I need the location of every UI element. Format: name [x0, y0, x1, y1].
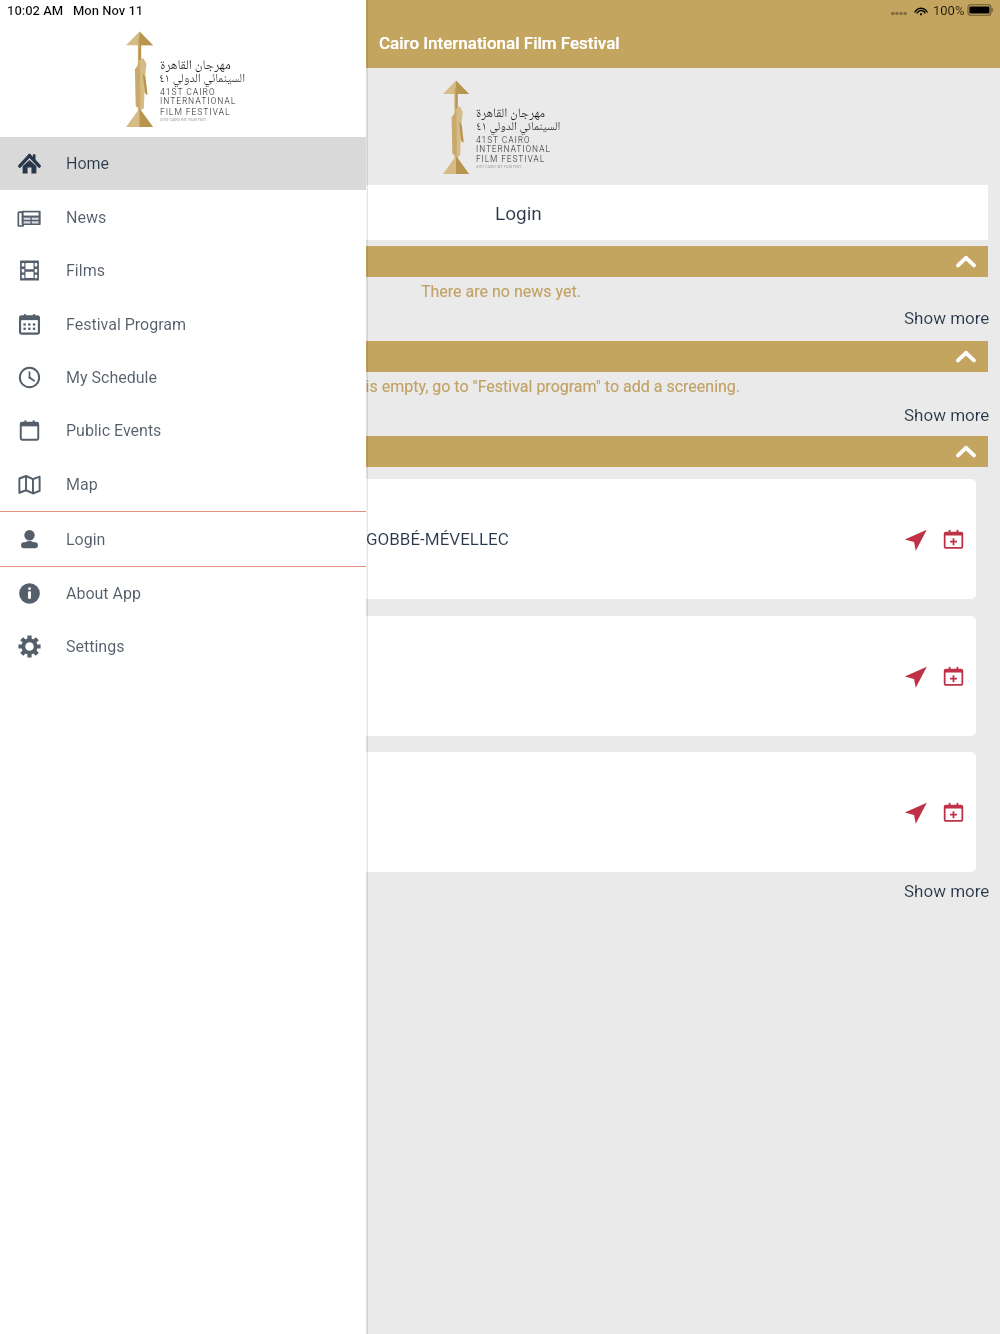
button[interactable]: Show more: [890, 304, 1000, 332]
button[interactable]: Map: [0, 457, 366, 511]
staticText: 41ST CAIRO INT. FILM FEST.: [160, 118, 207, 122]
button[interactable]: Add to calendar: [934, 657, 972, 695]
staticText: Home: [66, 154, 110, 173]
staticText: مهرجان القاهرة: [160, 55, 231, 78]
staticText: My Schedule: [66, 368, 157, 387]
button[interactable]: Home: [0, 137, 366, 190]
staticText: Login: [495, 202, 542, 224]
staticText: 41ST CAIRO: [476, 135, 531, 145]
staticText: There are no news yet.: [421, 282, 581, 301]
staticText: News: [66, 208, 107, 227]
staticText: About App: [66, 584, 141, 603]
staticText: Map: [66, 475, 98, 494]
staticText: INTERNATIONAL: [476, 144, 551, 154]
button[interactable]: News: [0, 190, 366, 244]
staticText: INTERNATIONAL: [160, 96, 237, 106]
staticText: Your schedule is empty, go to "Festival …: [261, 377, 741, 396]
button[interactable]: Login: [0, 185, 988, 240]
button[interactable]: Show more: [890, 877, 1000, 905]
button[interactable]: Show more: [890, 401, 1000, 429]
staticText: Settings: [66, 637, 125, 656]
button[interactable]: Collapse section: [0, 341, 988, 372]
staticText: السينمائي الدولي ٤١: [159, 69, 246, 90]
staticText: 10:02 AM: [7, 3, 64, 18]
button[interactable]: Add to calendar: [934, 793, 972, 831]
button[interactable]: About App: [0, 567, 366, 620]
button[interactable]: Directions: [24, 616, 976, 736]
staticText: Mon Nov 11: [73, 3, 144, 18]
staticText: Show more: [904, 308, 990, 328]
staticText: Festival Program: [66, 315, 187, 334]
button[interactable]: Directions: [896, 793, 934, 831]
staticText: Show more: [904, 405, 990, 425]
button[interactable]: LE VOYAGE DU PRINCE - J-F. LAGUIONIE, X.…: [24, 479, 976, 599]
staticText: 41ST CAIRO INT. FILM FEST.: [476, 165, 522, 169]
staticText: 41ST CAIRO: [160, 87, 216, 97]
button[interactable]: Directions: [24, 752, 976, 872]
staticText: Cairo International Film Festival: [379, 33, 620, 53]
button[interactable]: Login: [0, 512, 366, 566]
button[interactable]: Festival Program: [0, 297, 366, 351]
button[interactable]: Directions: [896, 657, 934, 695]
staticText: 100%: [933, 3, 965, 18]
staticText: مهرجان القاهرة: [476, 103, 546, 125]
staticText: Show more: [904, 881, 990, 901]
staticText: FILM FESTIVAL: [160, 107, 231, 117]
button[interactable]: Public Events: [0, 404, 366, 457]
staticText: Public Events: [66, 421, 162, 440]
staticText: LE VOYAGE DU PRINCE - J-F. LAGUIONIE, X.…: [34, 529, 509, 549]
button[interactable]: Collapse section: [0, 246, 988, 277]
button[interactable]: My Schedule: [0, 351, 366, 404]
button[interactable]: Add to calendar: [934, 520, 972, 558]
staticText: Films: [66, 261, 105, 280]
staticText: FILM FESTIVAL: [476, 154, 546, 164]
staticText: السينمائي الدولي ٤١: [476, 117, 561, 137]
button[interactable]: Collapse section: [0, 436, 988, 467]
button[interactable]: Films: [0, 244, 366, 297]
button[interactable]: Settings: [0, 620, 366, 673]
staticText: Login: [66, 530, 106, 549]
button[interactable]: Directions: [896, 520, 934, 558]
